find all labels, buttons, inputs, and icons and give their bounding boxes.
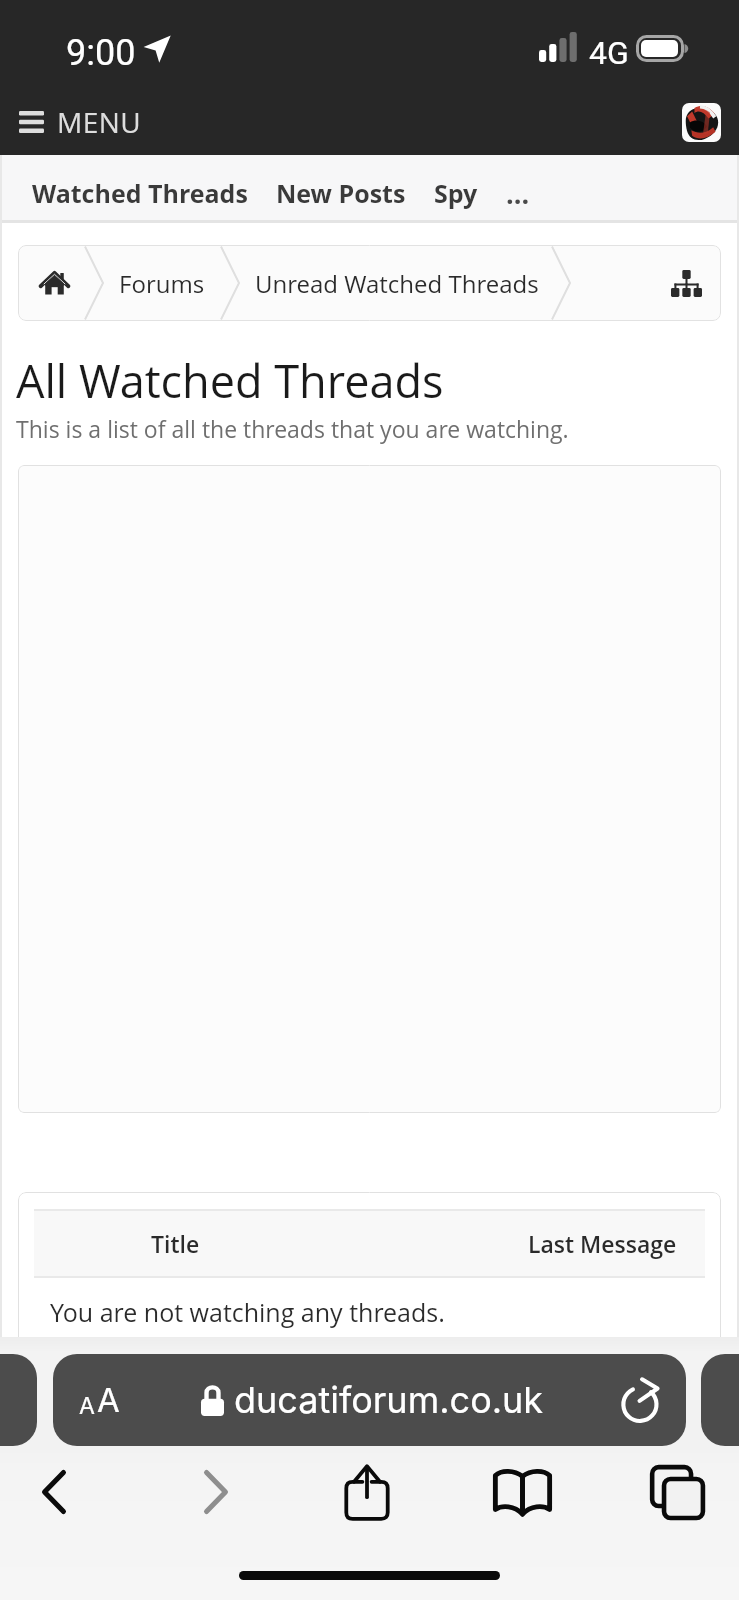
button[interactable]: Back	[10, 1449, 98, 1534]
staticText: A	[97, 1380, 120, 1420]
button[interactable]: Text size	[53, 1354, 686, 1446]
button[interactable]: Reload	[607, 1354, 675, 1446]
staticText: Spy	[434, 176, 478, 210]
button[interactable]: Bookmarks	[478, 1449, 566, 1534]
staticText: 9:00	[66, 27, 136, 80]
button[interactable]: New Posts	[262, 160, 420, 226]
button[interactable]: Forward	[172, 1449, 260, 1534]
staticText: Unread Watched Threads	[255, 267, 539, 300]
button[interactable]: Unread Watched Threads	[255, 267, 539, 300]
button[interactable]: Share	[323, 1449, 411, 1534]
button[interactable]: Site map	[664, 261, 708, 305]
staticText: Last Message	[528, 1228, 677, 1259]
staticText: This is a list of all the threads that y…	[16, 413, 569, 444]
button[interactable]: Text size	[65, 1368, 134, 1432]
staticText: Title	[151, 1228, 200, 1259]
staticText: Watched Threads	[32, 176, 248, 210]
button[interactable]: Tabs	[633, 1449, 721, 1534]
button[interactable]: Watched Threads	[18, 160, 262, 226]
staticText: 4G	[589, 30, 629, 77]
staticText: You are not watching any threads.	[50, 1295, 445, 1329]
button[interactable]: More	[492, 160, 544, 226]
button[interactable]: Spy	[420, 160, 492, 226]
staticText: Forums	[119, 267, 205, 300]
staticText: ducatiforum.co.uk	[234, 1378, 544, 1422]
button[interactable]: Home	[31, 260, 77, 306]
staticText: A	[79, 1392, 95, 1420]
button[interactable]: MENU	[10, 97, 151, 147]
button[interactable]: Account	[682, 103, 721, 142]
staticText: MENU	[57, 103, 141, 141]
staticText: All Watched Threads	[16, 350, 444, 411]
button[interactable]: Forums	[119, 267, 205, 300]
staticText: ...	[506, 175, 530, 212]
staticText: New Posts	[276, 176, 406, 210]
